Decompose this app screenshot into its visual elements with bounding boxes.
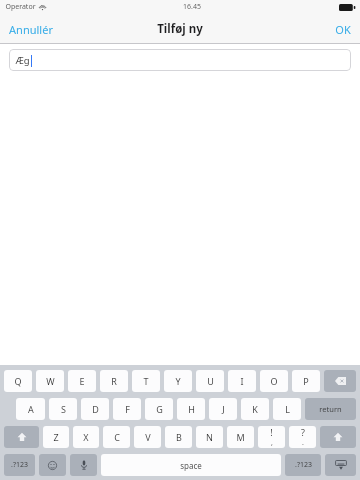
button[interactable]: O: [260, 370, 288, 392]
staticText: Z: [53, 431, 59, 443]
button[interactable]: space: [101, 454, 281, 476]
staticText: Operator: [5, 2, 36, 12]
button[interactable]: return: [305, 398, 356, 420]
staticText: F: [125, 403, 130, 415]
button[interactable]: L: [273, 398, 301, 420]
button[interactable]: D: [81, 398, 109, 420]
button[interactable]: G: [145, 398, 173, 420]
staticText: T: [143, 375, 149, 387]
button[interactable]: OK: [329, 17, 357, 42]
staticText: Tilføj ny: [157, 21, 203, 37]
button[interactable]: Q: [4, 370, 32, 392]
button[interactable]: R: [100, 370, 128, 392]
button[interactable]: H: [177, 398, 205, 420]
staticText: space: [180, 460, 202, 471]
staticText: O: [270, 375, 278, 387]
staticText: .: [302, 438, 304, 448]
staticText: OK: [335, 22, 351, 37]
button[interactable]: Y: [164, 370, 192, 392]
staticText: V: [145, 431, 151, 443]
staticText: H: [188, 403, 195, 415]
button[interactable]: Æg: [9, 49, 351, 71]
button[interactable]: B: [165, 426, 192, 448]
staticText: C: [114, 431, 120, 443]
staticText: .?123: [295, 460, 312, 470]
button[interactable]: U: [196, 370, 224, 392]
button[interactable]: .?123: [4, 454, 35, 476]
staticText: L: [285, 403, 290, 415]
button[interactable]: K: [241, 398, 269, 420]
button[interactable]: Shift: [4, 426, 39, 448]
staticText: D: [92, 403, 99, 415]
staticText: N: [206, 431, 213, 443]
button[interactable]: Emoji: [39, 454, 66, 476]
button[interactable]: T: [132, 370, 160, 392]
staticText: 16.45: [183, 2, 201, 12]
button[interactable]: Microphone: [70, 454, 97, 476]
staticText: R: [111, 375, 117, 387]
button[interactable]: A: [16, 398, 45, 420]
staticText: return: [319, 404, 342, 414]
staticText: E: [79, 375, 85, 387]
staticText: J: [222, 403, 225, 415]
staticText: Y: [175, 375, 181, 387]
staticText: U: [207, 375, 214, 387]
staticText: ,: [271, 438, 273, 448]
button[interactable]: W: [36, 370, 64, 392]
button[interactable]: N: [196, 426, 223, 448]
button[interactable]: I: [228, 370, 256, 392]
button[interactable]: Hide keyboard: [325, 454, 356, 476]
staticText: Annullér: [9, 22, 53, 37]
staticText: !: [270, 426, 273, 438]
staticText: G: [156, 403, 163, 415]
staticText: Æg: [15, 54, 30, 67]
button[interactable]: !: [258, 426, 285, 448]
staticText: M: [236, 431, 245, 443]
staticText: ?: [301, 426, 305, 438]
button[interactable]: J: [209, 398, 237, 420]
button[interactable]: S: [49, 398, 77, 420]
button[interactable]: Backspace: [324, 370, 356, 392]
button[interactable]: X: [73, 426, 99, 448]
staticText: S: [61, 403, 66, 415]
staticText: W: [46, 375, 55, 387]
staticText: X: [83, 431, 89, 443]
staticText: Q: [14, 375, 22, 387]
button[interactable]: Z: [43, 426, 69, 448]
staticText: P: [303, 375, 309, 387]
button[interactable]: ?: [289, 426, 316, 448]
button[interactable]: Annullér: [3, 17, 59, 42]
button[interactable]: .?123: [285, 454, 321, 476]
staticText: I: [240, 375, 244, 387]
staticText: B: [176, 431, 182, 443]
button[interactable]: P: [292, 370, 320, 392]
button[interactable]: E: [68, 370, 96, 392]
staticText: A: [28, 403, 34, 415]
button[interactable]: F: [113, 398, 141, 420]
staticText: K: [252, 403, 258, 415]
button[interactable]: C: [103, 426, 130, 448]
button[interactable]: V: [134, 426, 161, 448]
button[interactable]: M: [227, 426, 254, 448]
button[interactable]: Shift: [320, 426, 356, 448]
staticText: .?123: [11, 460, 28, 470]
